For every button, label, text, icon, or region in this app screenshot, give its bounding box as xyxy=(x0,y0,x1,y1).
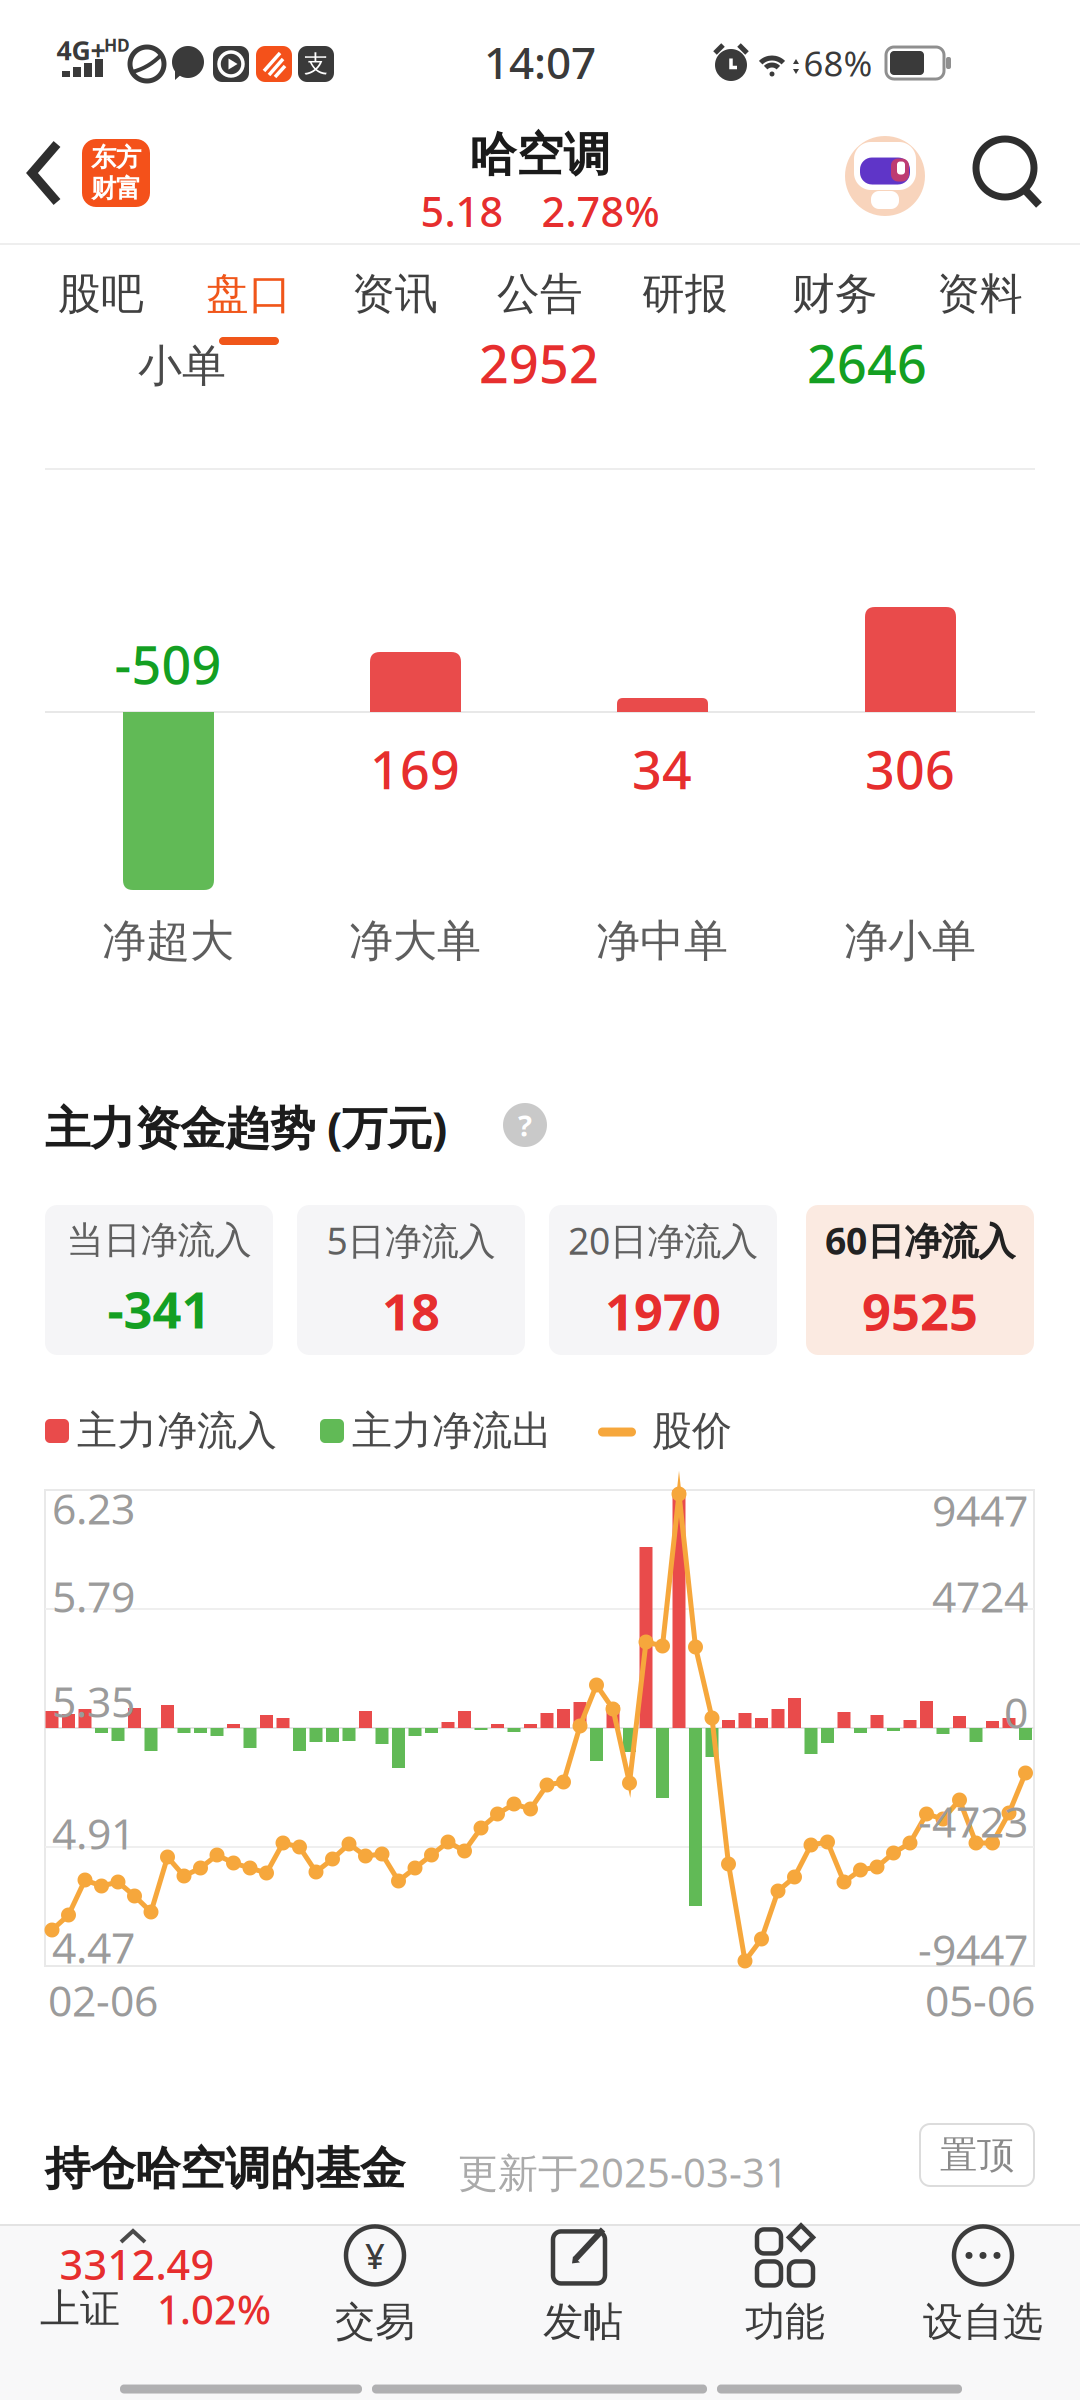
staticText: 主力净流出 xyxy=(352,1406,552,1455)
staticText: 9447 xyxy=(932,1482,1028,1538)
staticText: 05-06 xyxy=(925,1972,1035,2028)
staticText: 1.02% xyxy=(157,2282,271,2335)
staticText: ¥ xyxy=(365,2232,385,2278)
button[interactable]: 资讯 xyxy=(330,254,460,334)
button[interactable]: 设自选 xyxy=(888,2223,1078,2347)
staticText: 306 xyxy=(865,734,955,804)
staticText: 发帖 xyxy=(543,2297,623,2346)
staticText: -9447 xyxy=(918,1921,1028,1977)
button[interactable]: 当日净流入 xyxy=(45,1205,273,1355)
staticText: 股价 xyxy=(652,1406,732,1455)
staticText: 5日净流入 xyxy=(326,1216,495,1265)
staticText: 主力资金趋势 (万元) xyxy=(45,1097,447,1157)
staticText: 169 xyxy=(370,734,460,804)
staticText: 02-06 xyxy=(48,1972,158,2028)
staticText: ? xyxy=(518,1105,532,1144)
button[interactable]: 东方财富 xyxy=(82,139,150,207)
staticText: 1970 xyxy=(605,1277,721,1344)
staticText: 财富 xyxy=(91,173,141,204)
button[interactable]: 公告 xyxy=(475,254,605,334)
staticText: 5.79 xyxy=(52,1568,135,1624)
button[interactable]: AI assistant xyxy=(845,136,925,216)
button[interactable]: 置顶 xyxy=(920,2124,1034,2186)
staticText: 资料 xyxy=(937,268,1023,320)
staticText: 哈空调 xyxy=(469,126,610,184)
staticText: 更新于2025-03-31 xyxy=(458,2145,788,2198)
button[interactable]: 股吧 xyxy=(36,254,166,334)
staticText: 4.47 xyxy=(52,1919,135,1975)
staticText: 6.23 xyxy=(52,1480,135,1536)
staticText: 设自选 xyxy=(923,2297,1043,2346)
staticText: -509 xyxy=(114,629,221,699)
button[interactable]: 帮助 xyxy=(503,1103,547,1147)
staticText: 20日净流入 xyxy=(568,1216,758,1265)
button[interactable]: 资料 xyxy=(915,254,1045,334)
staticText: 资讯 xyxy=(352,268,438,320)
staticText: 4G+ xyxy=(56,32,105,68)
button[interactable]: 研报 xyxy=(620,254,750,334)
staticText: 财务 xyxy=(792,268,878,320)
staticText: 净中单 xyxy=(596,914,728,968)
staticText: -341 xyxy=(107,1275,210,1343)
staticText: 持仓哈空调的基金 xyxy=(45,2141,405,2197)
button[interactable]: Back xyxy=(27,140,63,206)
button[interactable]: 功能 xyxy=(690,2223,880,2347)
staticText: 公告 xyxy=(497,268,583,320)
button[interactable]: 财务 xyxy=(770,254,900,334)
staticText: 净超大 xyxy=(102,914,234,968)
button[interactable]: 5日净流入 xyxy=(297,1205,525,1355)
staticText: 5.35 xyxy=(52,1673,135,1729)
staticText: 股吧 xyxy=(58,268,144,320)
staticText: 研报 xyxy=(642,268,728,320)
staticText: 3312.49 xyxy=(59,2237,214,2291)
button[interactable]: 3312.49 xyxy=(0,2224,290,2354)
staticText: 9525 xyxy=(862,1277,978,1344)
button[interactable]: ¥ xyxy=(280,2223,470,2347)
staticText: 60日净流入 xyxy=(825,1216,1015,1265)
staticText: -4723 xyxy=(918,1793,1028,1849)
staticText: 4724 xyxy=(932,1568,1028,1624)
staticText: 小单 xyxy=(138,339,226,393)
staticText: 68% xyxy=(803,40,872,86)
button[interactable]: 发帖 xyxy=(488,2223,678,2347)
button[interactable]: Search xyxy=(976,139,1042,207)
staticText: 上证 xyxy=(40,2284,120,2333)
staticText: 2.78% xyxy=(541,184,659,238)
staticText: 支 xyxy=(304,49,328,79)
staticText: 18 xyxy=(382,1277,440,1344)
staticText: 净小单 xyxy=(844,914,976,968)
staticText: 交易 xyxy=(335,2297,415,2346)
staticText: 主力净流入 xyxy=(77,1406,277,1455)
staticText: 4.91 xyxy=(52,1805,135,1861)
button[interactable]: 盘口 xyxy=(184,254,314,334)
staticText: 0 xyxy=(1004,1684,1028,1740)
staticText: 功能 xyxy=(745,2297,825,2346)
staticText: 2646 xyxy=(807,328,927,398)
staticText: HD xyxy=(104,33,130,56)
staticText: 2952 xyxy=(479,328,599,398)
button[interactable]: 20日净流入 xyxy=(549,1205,777,1355)
staticText: 34 xyxy=(632,734,692,804)
button[interactable]: 60日净流入 xyxy=(806,1205,1034,1355)
staticText: 当日净流入 xyxy=(66,1217,251,1263)
staticText: 东方 xyxy=(91,142,141,173)
staticText: 净大单 xyxy=(349,914,481,968)
staticText: 14:07 xyxy=(484,33,596,91)
staticText: 置顶 xyxy=(940,2132,1014,2178)
staticText: 5.18 xyxy=(420,184,503,238)
staticText: 盘口 xyxy=(206,268,292,320)
